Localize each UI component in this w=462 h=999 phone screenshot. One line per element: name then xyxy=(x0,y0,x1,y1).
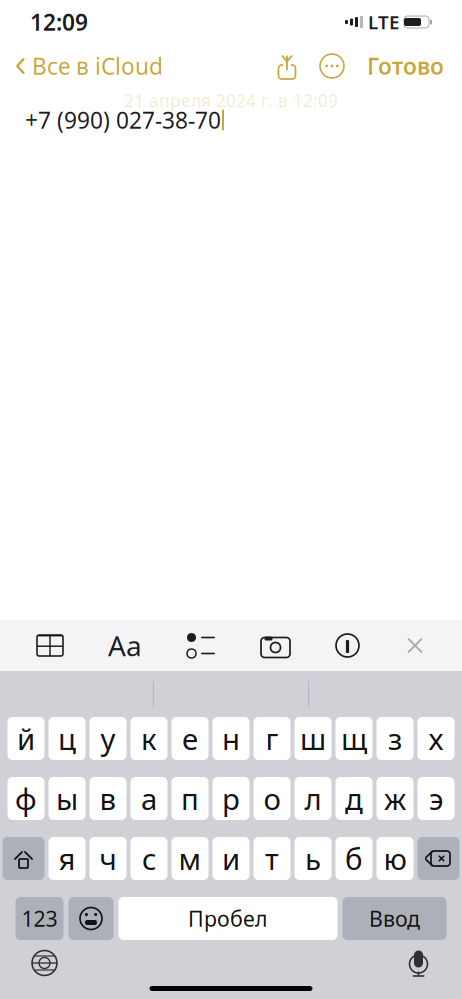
staticText: р xyxy=(222,779,240,818)
button[interactable]: Dictate xyxy=(405,948,431,978)
staticText: Пробел xyxy=(188,904,268,933)
button[interactable]: у xyxy=(89,717,126,760)
staticText: а xyxy=(141,779,157,818)
staticText: ч xyxy=(99,839,116,878)
button[interactable]: п xyxy=(171,777,208,820)
staticText: й xyxy=(17,719,35,758)
staticText: ю xyxy=(383,839,406,878)
button[interactable]: д xyxy=(335,777,372,820)
button[interactable]: Camera xyxy=(252,625,299,665)
staticText: ш xyxy=(300,719,326,758)
staticText: ж xyxy=(384,779,406,818)
button[interactable]: о xyxy=(253,777,290,820)
button[interactable]: Share xyxy=(265,43,309,89)
button[interactable]: ю xyxy=(376,837,413,880)
button[interactable]: й xyxy=(7,717,44,760)
staticText: ь xyxy=(305,839,321,878)
staticText: о xyxy=(263,779,280,818)
button[interactable]: т xyxy=(253,837,290,880)
staticText: Все в iCloud xyxy=(32,51,163,81)
staticText: л xyxy=(304,779,321,818)
button[interactable]: Пробел xyxy=(118,897,337,940)
staticText: н xyxy=(222,719,240,758)
button[interactable]: ь xyxy=(294,837,331,880)
button[interactable]: Все в iCloud xyxy=(0,43,163,89)
staticText: д xyxy=(345,779,363,818)
button[interactable]: р xyxy=(212,777,249,820)
button[interactable]: и xyxy=(212,837,249,880)
button[interactable]: Format xyxy=(100,619,150,672)
button[interactable]: ш xyxy=(294,717,331,760)
staticText: 12:09 xyxy=(30,7,88,37)
button[interactable]: б xyxy=(335,837,372,880)
staticText: щ xyxy=(341,719,367,758)
button[interactable]: в xyxy=(89,777,126,820)
staticText: +7 (990) 027-38-70 xyxy=(25,105,221,135)
staticText: з xyxy=(388,719,402,758)
button[interactable]: е xyxy=(171,717,208,760)
staticText: Ввод xyxy=(369,904,420,933)
staticText: Готово xyxy=(367,51,444,81)
button[interactable]: ф xyxy=(7,777,44,820)
staticText: у xyxy=(100,719,115,758)
button[interactable]: ц xyxy=(48,717,85,760)
staticText: LTE xyxy=(368,10,399,34)
button[interactable]: 123 xyxy=(15,897,63,940)
button[interactable]: More xyxy=(309,43,355,89)
staticText: к xyxy=(141,719,157,758)
button[interactable]: ж xyxy=(376,777,413,820)
staticText: ы xyxy=(56,779,78,818)
staticText: я xyxy=(58,839,75,878)
button[interactable]: Change keyboard xyxy=(30,949,58,977)
button[interactable]: я xyxy=(48,837,85,880)
button[interactable]: г xyxy=(253,717,290,760)
button[interactable]: а xyxy=(130,777,167,820)
button[interactable]: щ xyxy=(335,717,372,760)
button[interactable]: ч xyxy=(89,837,126,880)
staticText: т xyxy=(265,839,279,878)
staticText: г xyxy=(265,719,278,758)
button[interactable]: Ввод xyxy=(342,897,446,940)
staticText: 123 xyxy=(21,904,57,933)
button[interactable]: Table xyxy=(28,626,72,665)
staticText: Aa xyxy=(108,627,142,664)
staticText: в xyxy=(99,779,116,818)
staticText: э xyxy=(429,779,443,818)
staticText: е xyxy=(182,719,198,758)
staticText: ц xyxy=(58,719,76,758)
button[interactable]: с xyxy=(130,837,167,880)
button[interactable]: Emoji xyxy=(68,897,113,940)
staticText: х xyxy=(428,719,443,758)
staticText: 21 апреля 2024 г. в 12:09 xyxy=(124,89,338,112)
button[interactable]: Markup xyxy=(327,625,368,666)
button[interactable]: н xyxy=(212,717,249,760)
button[interactable]: ы xyxy=(48,777,85,820)
staticText: с xyxy=(142,839,156,878)
staticText: ф xyxy=(15,779,37,818)
staticText: б xyxy=(345,839,363,878)
button[interactable]: Delete xyxy=(417,837,459,880)
button[interactable]: э xyxy=(417,777,454,820)
button[interactable]: л xyxy=(294,777,331,820)
staticText: м xyxy=(178,839,201,878)
button[interactable]: Close keyboard xyxy=(396,626,434,664)
button[interactable]: к xyxy=(130,717,167,760)
button[interactable]: Shift xyxy=(2,837,44,880)
button[interactable]: Готово xyxy=(355,43,456,89)
button[interactable]: х xyxy=(417,717,454,760)
staticText: п xyxy=(181,779,199,818)
staticText: и xyxy=(222,839,240,878)
button[interactable]: Checklist xyxy=(178,625,224,665)
button[interactable]: з xyxy=(376,717,413,760)
button[interactable]: м xyxy=(171,837,208,880)
